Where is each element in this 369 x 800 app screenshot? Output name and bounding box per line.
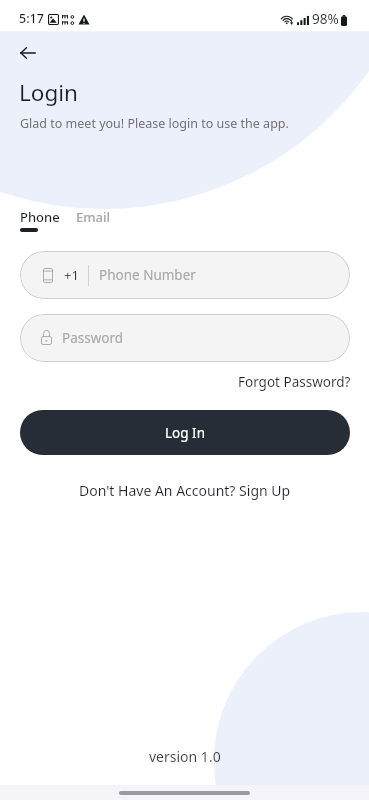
- staticText: 98%: [312, 10, 339, 28]
- staticText: version 1.0: [149, 747, 221, 766]
- staticText: Login: [19, 77, 78, 108]
- button[interactable]: +1: [20, 251, 350, 299]
- staticText: Password: [62, 329, 124, 347]
- staticText: Phone: [20, 208, 60, 226]
- staticText: 5:17: [19, 10, 44, 27]
- button[interactable]: Back: [12, 37, 44, 69]
- staticText: Phone Number: [99, 266, 196, 284]
- button[interactable]: Phone: [14, 203, 66, 231]
- staticText: Don't Have An Account? Sign Up: [79, 481, 291, 500]
- button[interactable]: Forgot Password?: [238, 373, 351, 391]
- staticText: Log In: [165, 424, 205, 442]
- button[interactable]: Password: [20, 314, 350, 362]
- staticText: Glad to meet you! Please login to use th…: [20, 115, 289, 132]
- button[interactable]: Email: [70, 203, 117, 231]
- button[interactable]: Don't Have An Account? Sign Up: [79, 481, 291, 500]
- staticText: Email: [76, 208, 111, 226]
- staticText: +1: [64, 266, 79, 284]
- staticText: Forgot Password?: [238, 373, 351, 391]
- button[interactable]: Log In: [20, 410, 350, 455]
